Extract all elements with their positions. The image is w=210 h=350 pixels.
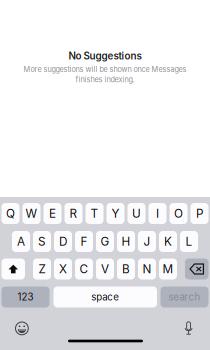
button[interactable]: Shift — [1, 258, 25, 279]
button[interactable]: R — [64, 203, 82, 224]
button[interactable]: Dictation — [184, 321, 193, 335]
button[interactable]: V — [96, 258, 114, 279]
button[interactable]: S — [33, 231, 51, 252]
staticText: Y — [111, 206, 119, 221]
staticText: Q — [6, 206, 15, 221]
staticText: search — [168, 291, 200, 303]
staticText: H — [121, 234, 130, 249]
staticText: J — [143, 234, 150, 249]
button[interactable]: Z — [33, 258, 51, 279]
staticText: K — [164, 234, 172, 249]
staticText: V — [101, 262, 109, 276]
staticText: F — [80, 234, 87, 249]
staticText: P — [196, 206, 203, 221]
button[interactable]: E — [43, 203, 61, 224]
button[interactable]: 123 — [1, 286, 49, 307]
button[interactable]: T — [85, 203, 103, 224]
staticText: finishes indexing. — [75, 75, 134, 84]
button[interactable]: D — [54, 231, 72, 252]
button[interactable]: J — [138, 231, 156, 252]
button[interactable]: G — [96, 231, 114, 252]
staticText: T — [90, 206, 98, 221]
button[interactable]: Q — [1, 203, 19, 224]
staticText: N — [142, 262, 151, 276]
button[interactable]: Emoji — [15, 322, 28, 335]
button[interactable]: Y — [106, 203, 124, 224]
staticText: G — [100, 234, 109, 249]
button[interactable]: space — [53, 286, 157, 307]
button[interactable]: L — [180, 231, 198, 252]
button[interactable]: N — [138, 258, 156, 279]
staticText: S — [38, 234, 46, 249]
button[interactable]: O — [169, 203, 187, 224]
button[interactable]: search — [160, 286, 208, 307]
button[interactable]: Delete — [185, 258, 208, 279]
staticText: C — [79, 262, 88, 276]
staticText: O — [174, 206, 183, 221]
button[interactable]: F — [75, 231, 93, 252]
button[interactable]: P — [190, 203, 208, 224]
button[interactable]: X — [54, 258, 72, 279]
button[interactable]: C — [75, 258, 93, 279]
staticText: B — [122, 262, 130, 276]
staticText: M — [162, 262, 173, 276]
button[interactable]: W — [22, 203, 40, 224]
staticText: X — [59, 262, 67, 276]
staticText: Z — [38, 262, 45, 276]
button[interactable]: I — [148, 203, 166, 224]
staticText: D — [59, 234, 67, 249]
button[interactable]: U — [127, 203, 145, 224]
staticText: I — [156, 206, 159, 221]
staticText: R — [69, 206, 77, 221]
staticText: space — [91, 291, 119, 303]
staticText: E — [49, 206, 56, 221]
staticText: W — [25, 206, 37, 221]
staticText: No Suggestions — [68, 50, 141, 62]
button[interactable]: M — [159, 258, 177, 279]
staticText: More suggestions will be shown once Mess… — [23, 65, 186, 74]
staticText: A — [17, 234, 25, 249]
button[interactable]: K — [159, 231, 177, 252]
staticText: U — [132, 206, 141, 221]
button[interactable]: A — [12, 231, 30, 252]
staticText: 123 — [17, 291, 33, 303]
button[interactable]: B — [117, 258, 135, 279]
staticText: L — [185, 234, 192, 249]
button[interactable]: H — [117, 231, 135, 252]
